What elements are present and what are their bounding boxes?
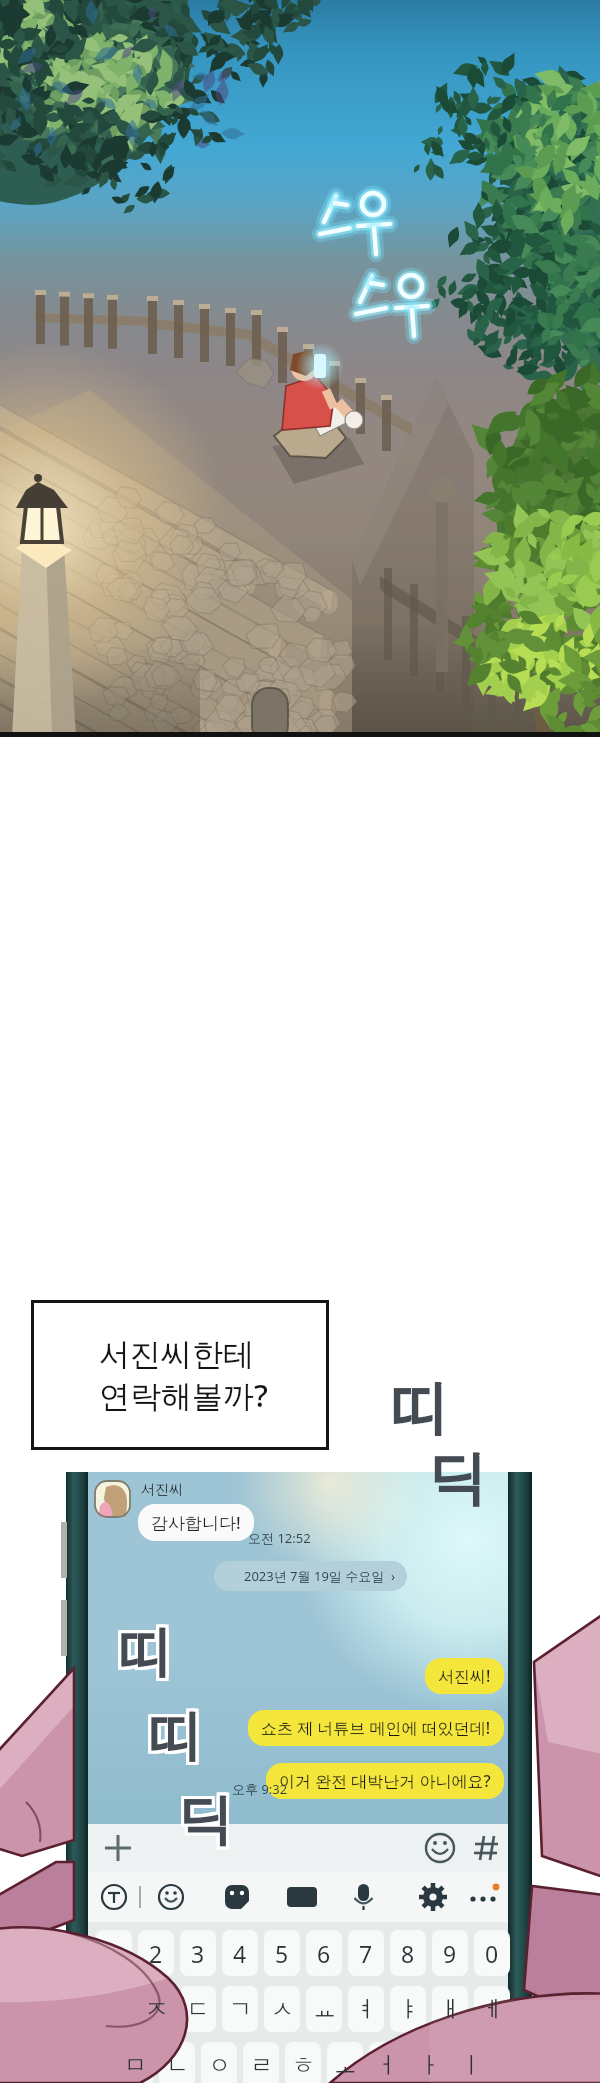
button[interactable]: 8 [390, 1930, 426, 1976]
button[interactable]: ㅇ [201, 2042, 237, 2083]
button[interactable]: ㅎ [285, 2042, 321, 2083]
button[interactable]: ㅁ [117, 2042, 153, 2083]
staticText: ㄹ [250, 2051, 273, 2080]
staticText: 7 [359, 1938, 373, 1969]
staticText: ㅁ [124, 2051, 147, 2080]
staticText: 띠 [145, 1705, 199, 1773]
button[interactable]: 2023년 7월 19일 수요일 › [214, 1561, 407, 1591]
button[interactable]: 감사합니다! [138, 1504, 254, 1541]
staticText: 띠 [118, 1621, 172, 1689]
staticText: ㄴ [166, 2051, 189, 2080]
staticText: ㅛ [313, 1995, 336, 2024]
staticText: ㅔ [481, 1995, 504, 2024]
staticText: 띠 [118, 1618, 172, 1686]
staticText: ㅇ [208, 2051, 231, 2080]
button[interactable]: ㅔ [474, 1986, 510, 2032]
button[interactable]: ㅛ [306, 1986, 342, 2032]
staticText: 띠 [121, 1621, 175, 1689]
staticText: 2 [149, 1938, 163, 1969]
staticText: 쇼츠 제 너튜브 메인에 떠있던데! [261, 1717, 491, 1739]
staticText: 서진씨 [141, 1481, 183, 1499]
button[interactable]: ㅣ [453, 2042, 489, 2083]
staticText: ㅈ [145, 1995, 168, 2024]
button[interactable]: ㅑ [390, 1986, 426, 2032]
staticText: 서진씨! [438, 1665, 491, 1687]
staticText: 띠 [148, 1705, 202, 1773]
button[interactable] [96, 1930, 132, 1976]
staticText: 띠 [121, 1618, 175, 1686]
button[interactable]: 쇼츠 제 너튜브 메인에 떠있던데! [248, 1710, 504, 1746]
staticText: 띠 [115, 1615, 169, 1683]
staticText: 띠 [151, 1699, 205, 1767]
staticText: 이거 완전 대박난거 아니에요? [279, 1770, 491, 1792]
staticText: 연락해볼까? [99, 1374, 268, 1416]
staticText: 딕 [178, 1786, 232, 1854]
staticText: 딕 [181, 1786, 235, 1854]
button[interactable]: ㄹ [243, 2042, 279, 2083]
button[interactable] [96, 1986, 132, 2032]
staticText: 띠 [151, 1705, 205, 1773]
staticText: ㅓ [376, 2051, 399, 2080]
staticText: 딕 [178, 1783, 232, 1851]
staticText: 6 [317, 1938, 331, 1969]
staticText: ㅅ [271, 1995, 294, 2024]
button[interactable]: ㅕ [348, 1986, 384, 2032]
button[interactable]: ㅈ [138, 1986, 174, 2032]
button[interactable]: ㅗ [327, 2042, 363, 2083]
staticText: 4 [233, 1938, 247, 1969]
staticText: ㄷ [187, 1995, 210, 2024]
button[interactable]: 0 [474, 1930, 510, 1976]
staticText: 감사합니다! [151, 1511, 241, 1534]
staticText: 딕 [175, 1783, 229, 1851]
staticText: 딕 [428, 1442, 486, 1515]
staticText: 띠 [148, 1702, 202, 1770]
button[interactable]: 2 [138, 1930, 174, 1976]
staticText: 띠 [145, 1702, 199, 1770]
staticText: 딕 [181, 1783, 235, 1851]
staticText: 띠 [148, 1699, 202, 1767]
staticText: 9 [443, 1938, 457, 1969]
staticText: ㄱ [229, 1995, 252, 2024]
staticText: 오후 9:32 [232, 1780, 288, 1798]
staticText: 띠 [151, 1702, 205, 1770]
button[interactable]: ㄱ [222, 1986, 258, 2032]
staticText: 띠 [121, 1615, 175, 1683]
button[interactable]: ㅏ [411, 2042, 447, 2083]
staticText: ㅏ [418, 2051, 441, 2080]
button[interactable]: 6 [306, 1930, 342, 1976]
staticText: 8 [401, 1938, 415, 1969]
staticText: 띠 [145, 1699, 199, 1767]
button[interactable]: 5 [264, 1930, 300, 1976]
staticText: ㅗ [334, 2051, 357, 2080]
button[interactable]: ㄷ [180, 1986, 216, 2032]
button[interactable]: 이거 완전 대박난거 아니에요? [266, 1763, 504, 1799]
staticText: ㅣ [460, 2051, 483, 2080]
staticText: 5 [275, 1938, 289, 1969]
staticText: 딕 [178, 1789, 232, 1857]
button[interactable]: 서진씨한테 [31, 1300, 329, 1450]
staticText: 서진씨한테 [99, 1335, 254, 1374]
staticText: ㅎ [292, 2051, 315, 2080]
staticText: 딕 [175, 1789, 229, 1857]
staticText: 띠 [118, 1615, 172, 1683]
staticText: 3 [191, 1938, 205, 1969]
button[interactable]: 4 [222, 1930, 258, 1976]
staticText: 2023년 7월 19일 수요일 › [244, 1567, 395, 1585]
staticText: 오전 12:52 [248, 1529, 311, 1547]
button[interactable]: 서진씨! [425, 1658, 504, 1694]
staticText: 딕 [175, 1786, 229, 1854]
staticText: ㅑ [397, 1995, 420, 2024]
button[interactable]: 3 [180, 1930, 216, 1976]
staticText: 띠 [390, 1372, 448, 1445]
staticText: 띠 [115, 1621, 169, 1689]
staticText: ㅕ [355, 1995, 378, 2024]
button[interactable]: 7 [348, 1930, 384, 1976]
staticText: ㅐ [439, 1995, 462, 2024]
button[interactable]: ㄴ [159, 2042, 195, 2083]
staticText: 딕 [181, 1789, 235, 1857]
staticText: 띠 [115, 1618, 169, 1686]
button[interactable]: 9 [432, 1930, 468, 1976]
button[interactable]: ㅐ [432, 1986, 468, 2032]
button[interactable]: ㅅ [264, 1986, 300, 2032]
button[interactable]: ㅓ [369, 2042, 405, 2083]
